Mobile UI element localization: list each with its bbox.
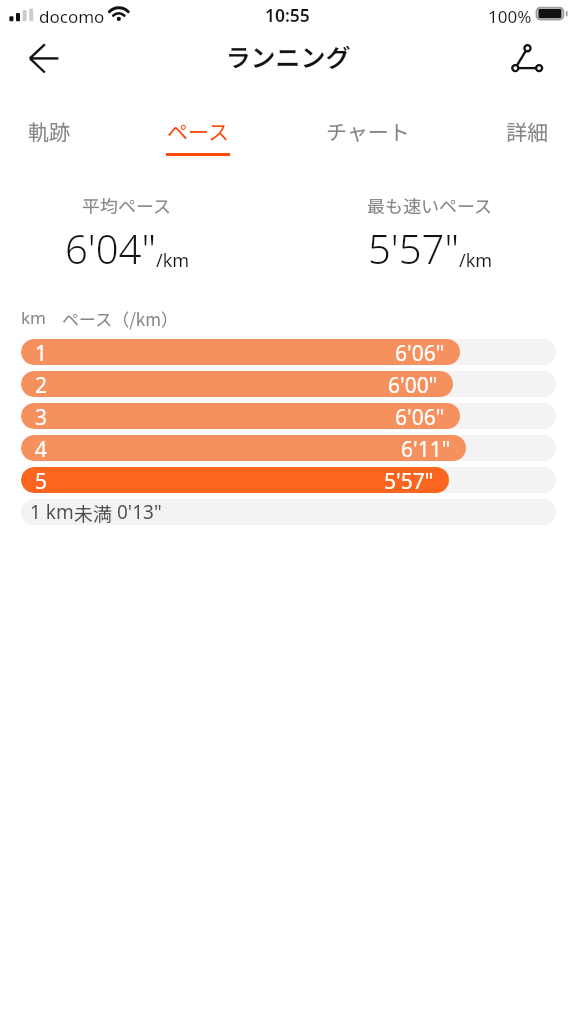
staticText: 6'11" bbox=[401, 435, 451, 461]
staticText: 5'57" bbox=[368, 221, 459, 275]
staticText: 6'00" bbox=[388, 371, 438, 397]
staticText: ランニング bbox=[0, 38, 576, 74]
button[interactable]: Share bbox=[492, 33, 544, 83]
staticText: 0'13" bbox=[117, 499, 162, 525]
staticText: ペース bbox=[167, 116, 229, 146]
staticText: 4 bbox=[35, 435, 48, 461]
staticText: 100% bbox=[488, 5, 532, 28]
staticText: /km bbox=[156, 248, 190, 273]
staticText: 最も速いペース bbox=[367, 192, 493, 218]
button[interactable]: Back bbox=[14, 33, 74, 83]
button[interactable]: 4 bbox=[21, 435, 556, 461]
staticText: 5 bbox=[35, 467, 48, 493]
button[interactable]: 軌跡 bbox=[28, 116, 70, 146]
staticText: 未満 bbox=[74, 499, 117, 525]
staticText: 2 bbox=[35, 371, 48, 397]
staticText: 6'06" bbox=[395, 403, 445, 429]
button[interactable]: 2 bbox=[21, 371, 556, 397]
staticText: チャート bbox=[326, 116, 410, 146]
staticText: 平均ペース bbox=[82, 192, 172, 218]
staticText: 10:55 bbox=[265, 3, 310, 27]
button[interactable]: チャート bbox=[326, 116, 410, 146]
button[interactable]: 5 bbox=[21, 467, 556, 493]
staticText: 軌跡 bbox=[28, 116, 70, 146]
staticText: 1 bbox=[35, 339, 48, 365]
button[interactable]: 3 bbox=[21, 403, 556, 429]
staticText: 6'04" bbox=[65, 221, 156, 275]
button[interactable]: 1 bbox=[21, 339, 556, 365]
staticText: 6'06" bbox=[395, 339, 445, 365]
staticText: km bbox=[21, 306, 46, 329]
staticText: /km bbox=[459, 248, 493, 273]
button[interactable]: 詳細 bbox=[506, 116, 548, 146]
button[interactable]: 1 km bbox=[21, 499, 556, 525]
staticText: 詳細 bbox=[506, 116, 548, 146]
staticText: 3 bbox=[35, 403, 48, 429]
staticText: ペース（/km） bbox=[62, 306, 178, 331]
staticText: docomo bbox=[39, 5, 105, 28]
staticText: 5'57" bbox=[384, 467, 434, 493]
staticText: 1 km bbox=[30, 499, 74, 525]
button[interactable]: ペース bbox=[166, 116, 230, 156]
